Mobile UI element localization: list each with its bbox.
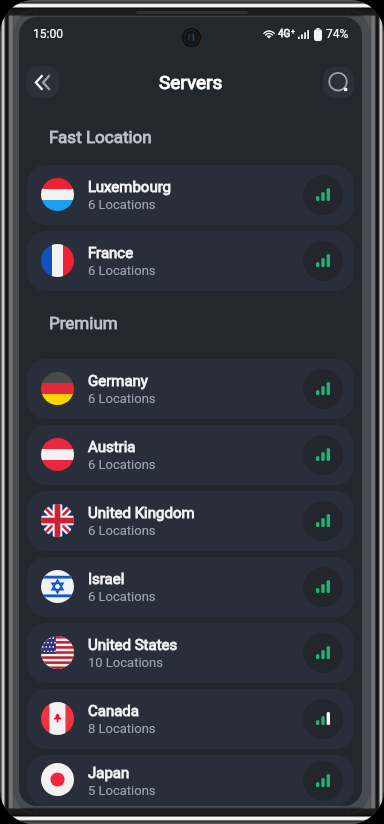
button[interactable]: Japan xyxy=(27,755,354,806)
staticText: 6 Locations xyxy=(88,391,156,406)
staticText: Premium xyxy=(49,313,118,333)
staticText: Japan xyxy=(88,764,130,782)
staticText: Israel xyxy=(88,570,125,588)
staticText: 8 Locations xyxy=(88,721,156,736)
staticText: Germany xyxy=(88,372,148,390)
button[interactable]: Back xyxy=(26,66,59,98)
staticText: 6 Locations xyxy=(88,457,156,472)
button[interactable]: Luxembourg xyxy=(27,165,354,225)
staticText: Austria xyxy=(88,438,136,456)
staticText: 6 Locations xyxy=(88,523,156,538)
button[interactable]: Canada xyxy=(27,689,354,749)
staticText: Servers xyxy=(159,71,223,93)
button[interactable]: United States xyxy=(27,623,354,683)
staticText: Luxembourg xyxy=(88,178,172,196)
staticText: + xyxy=(291,28,295,36)
staticText: 6 Locations xyxy=(88,589,156,604)
button[interactable]: Germany xyxy=(27,359,354,419)
staticText: 6 Locations xyxy=(88,197,156,212)
button[interactable]: France xyxy=(27,231,354,291)
button[interactable]: Search xyxy=(323,67,354,98)
button[interactable]: United Kingdom xyxy=(27,491,354,551)
staticText: 74% xyxy=(326,27,349,41)
staticText: 4G xyxy=(278,28,291,40)
staticText: 10 Locations xyxy=(88,655,163,670)
staticText: United States xyxy=(88,636,178,654)
staticText: United Kingdom xyxy=(88,504,195,522)
button[interactable]: Austria xyxy=(27,425,354,485)
staticText: Fast Location xyxy=(49,127,152,147)
button[interactable]: Israel xyxy=(27,557,354,617)
staticText: France xyxy=(88,244,134,262)
staticText: 6 Locations xyxy=(88,263,156,278)
staticText: Canada xyxy=(88,702,139,720)
staticText: 5 Locations xyxy=(88,783,156,798)
staticText: 15:00 xyxy=(33,27,63,41)
